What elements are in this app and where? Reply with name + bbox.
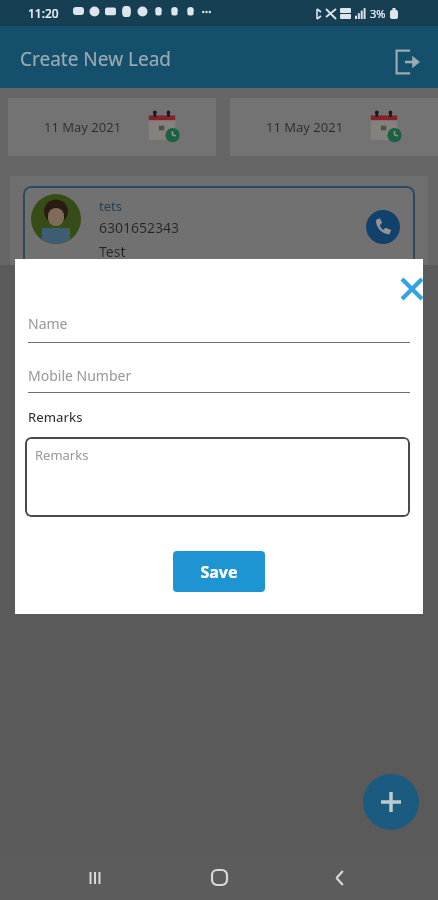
button[interactable]: 11 May 2021 (8, 98, 216, 156)
staticText: Name (28, 314, 68, 333)
staticText: Mobile Number (28, 366, 132, 385)
button[interactable]: Back (317, 855, 363, 900)
staticText: Save (200, 561, 238, 583)
staticText: Remarks (35, 446, 89, 464)
staticText: Create New Lead (20, 46, 172, 72)
button[interactable]: Save (173, 551, 265, 592)
staticText: 3% (370, 6, 386, 21)
button[interactable]: Call (366, 210, 400, 244)
button[interactable]: 11 May 2021 (230, 98, 438, 156)
button[interactable]: Home (196, 855, 242, 900)
button[interactable]: tets (23, 186, 415, 268)
staticText: 11 May 2021 (44, 118, 122, 136)
button[interactable]: Recent apps (72, 855, 118, 900)
staticText: 6301652343 (99, 218, 180, 237)
button[interactable]: Logout (385, 40, 429, 84)
staticText: Test (99, 242, 126, 261)
button[interactable]: Add new lead (363, 774, 419, 830)
button[interactable]: Close (390, 267, 434, 311)
staticText: Remarks (28, 408, 83, 426)
staticText: tets (99, 197, 122, 215)
staticText: 11:20 (28, 5, 59, 21)
staticText: 11 May 2021 (266, 118, 344, 136)
button[interactable]: Remarks (25, 437, 410, 517)
